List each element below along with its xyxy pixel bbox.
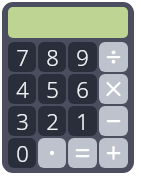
- staticText: 3: [16, 106, 29, 136]
- button[interactable]: Add: [99, 138, 128, 168]
- staticText: 1: [76, 106, 89, 136]
- button[interactable]: 3: [8, 106, 36, 136]
- button[interactable]: 6: [68, 74, 97, 104]
- staticText: 4: [16, 74, 29, 104]
- button[interactable]: 4: [8, 74, 36, 104]
- button[interactable]: Subtract: [99, 106, 128, 136]
- staticText: 8: [46, 42, 59, 72]
- button[interactable]: Multiply: [99, 74, 128, 104]
- button[interactable]: 8: [38, 42, 66, 72]
- button[interactable]: 9: [68, 42, 97, 72]
- staticText: 7: [16, 42, 29, 72]
- staticText: 5: [46, 74, 59, 104]
- button[interactable]: 5: [38, 74, 66, 104]
- staticText: 9: [76, 42, 89, 72]
- staticText: 0: [16, 138, 29, 168]
- staticText: 2: [46, 106, 59, 136]
- button[interactable]: Equals: [68, 138, 97, 168]
- button[interactable]: Display: [8, 7, 128, 38]
- staticText: 6: [76, 74, 89, 104]
- button[interactable]: Divide: [99, 42, 128, 72]
- button[interactable]: 1: [68, 106, 97, 136]
- button[interactable]: 2: [38, 106, 66, 136]
- button[interactable]: Decimal point: [38, 138, 66, 168]
- button[interactable]: 0: [8, 138, 36, 168]
- button[interactable]: 7: [8, 42, 36, 72]
